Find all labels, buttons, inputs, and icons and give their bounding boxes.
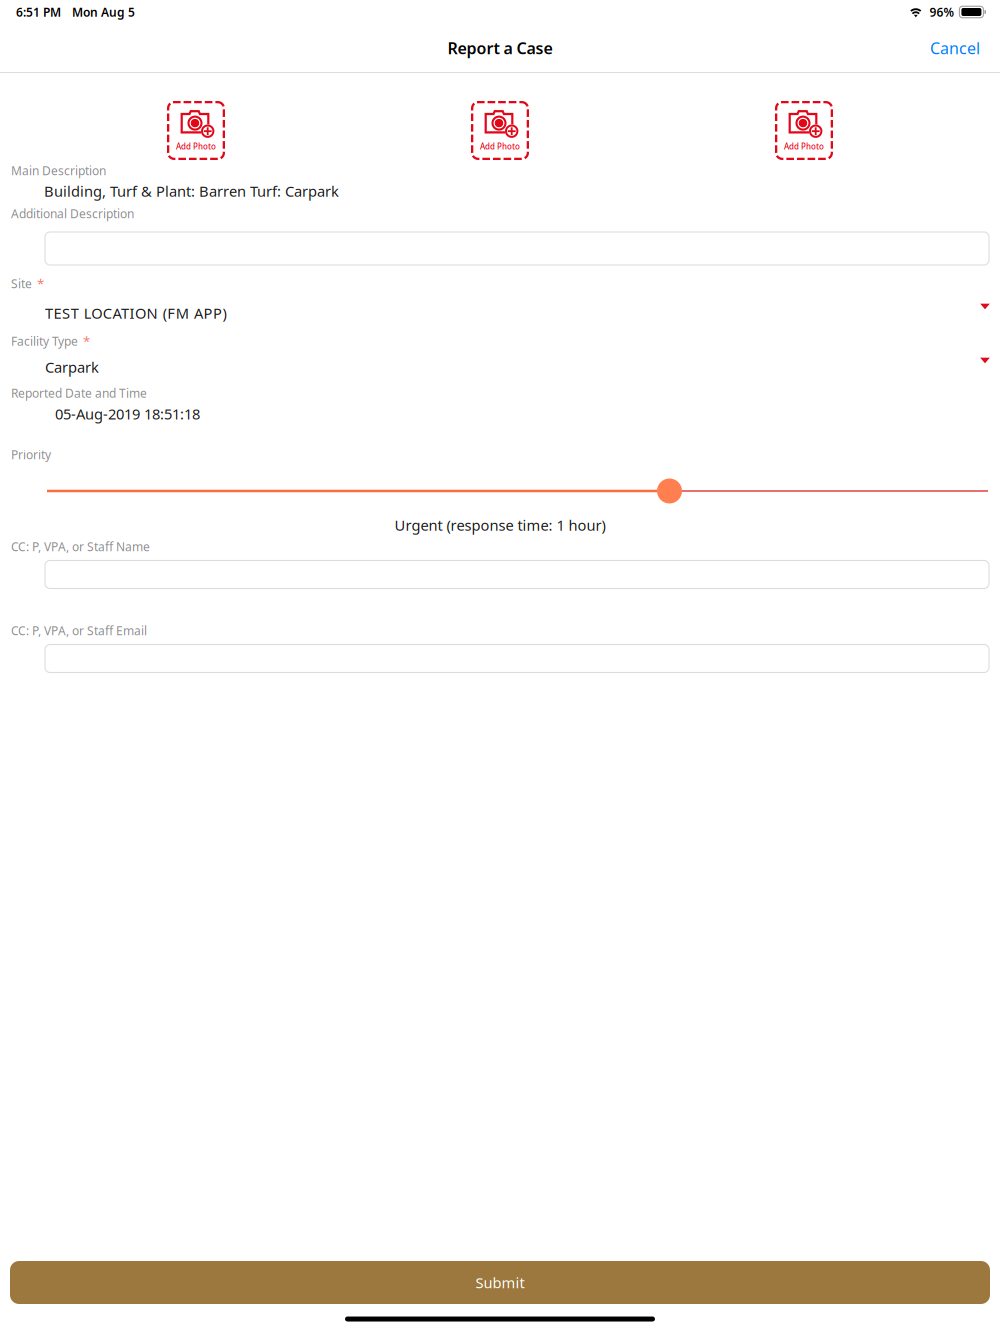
- button[interactable]: Carpark: [0, 352, 1000, 382]
- button[interactable]: TEST LOCATION (FM APP): [0, 296, 1000, 330]
- staticText: Add Photo: [480, 141, 520, 152]
- staticText: Site: [11, 275, 32, 291]
- staticText: TEST LOCATION (FM APP): [45, 303, 226, 323]
- staticText: Additional Description: [11, 205, 134, 221]
- staticText: Urgent (response time: 1 hour): [394, 515, 605, 535]
- staticText: 6:51 PM: [16, 4, 61, 20]
- staticText: Building, Turf & Plant: Barren Turf: Car…: [44, 181, 339, 201]
- staticText: Facility Type: [11, 333, 78, 349]
- staticText: *: [37, 275, 44, 292]
- button[interactable]: CC: P, VPA, or Staff Email: [0, 641, 1000, 676]
- staticText: Cancel: [930, 37, 980, 59]
- button[interactable]: Submit: [10, 1261, 990, 1304]
- staticText: Priority: [11, 446, 51, 462]
- staticText: Reported Date and Time: [11, 385, 147, 401]
- button[interactable]: Additional Description: [0, 226, 1000, 271]
- button[interactable]: Add Photo: [775, 101, 833, 160]
- staticText: *: [83, 332, 90, 350]
- staticText: 05-Aug-2019 18:51:18: [55, 404, 200, 423]
- staticText: Add Photo: [176, 141, 216, 152]
- button[interactable]: CC: P, VPA, or Staff Name: [0, 557, 1000, 592]
- staticText: CC: P, VPA, or Staff Email: [11, 622, 147, 638]
- button[interactable]: Add Photo: [471, 101, 529, 160]
- staticText: Submit: [475, 1273, 524, 1292]
- staticText: Report a Case: [447, 37, 552, 59]
- staticText: Mon Aug 5: [72, 4, 135, 20]
- staticText: Add Photo: [784, 141, 824, 152]
- staticText: CC: P, VPA, or Staff Name: [11, 538, 150, 554]
- staticText: Main Description: [11, 162, 106, 178]
- staticText: Carpark: [45, 357, 99, 377]
- staticText: 96%: [929, 4, 954, 20]
- button[interactable]: Priority: [0, 478, 682, 503]
- button[interactable]: Add Photo: [167, 101, 225, 160]
- button[interactable]: Cancel: [922, 30, 988, 66]
